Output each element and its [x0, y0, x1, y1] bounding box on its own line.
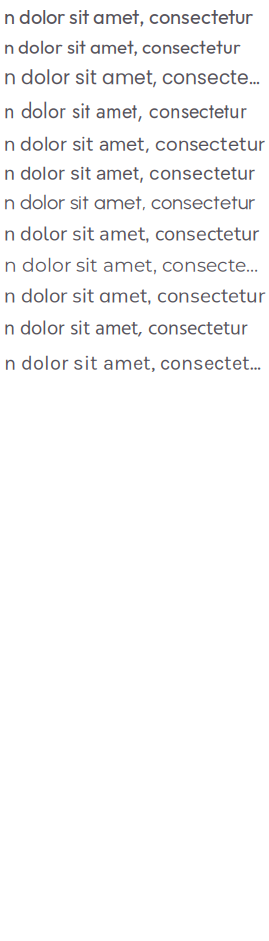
staticText: n dolor sit amet, consectetur [4, 190, 255, 214]
staticText: n dolor sit amet, consectetur [4, 4, 253, 29]
staticText: n dolor sit amet, consectetur [4, 254, 265, 276]
staticText: n dolor sit amet, consectetur [4, 351, 265, 375]
staticText: n dolor sit amet, consectetur [4, 313, 248, 345]
staticText: n dolor sit amet, consectetur [4, 162, 255, 184]
staticText: n dolor sit amet, consectetur [4, 282, 265, 307]
staticText: n dolor sit amet, consectetur [4, 65, 265, 91]
staticText: n dolor sit amet, consectetur [4, 220, 259, 248]
staticText: n dolor sit amet, consectetur [4, 132, 265, 156]
staticText: n dolor sit amet, consectetur [4, 97, 247, 126]
staticText: n dolor sit amet, consectetur [4, 35, 241, 59]
